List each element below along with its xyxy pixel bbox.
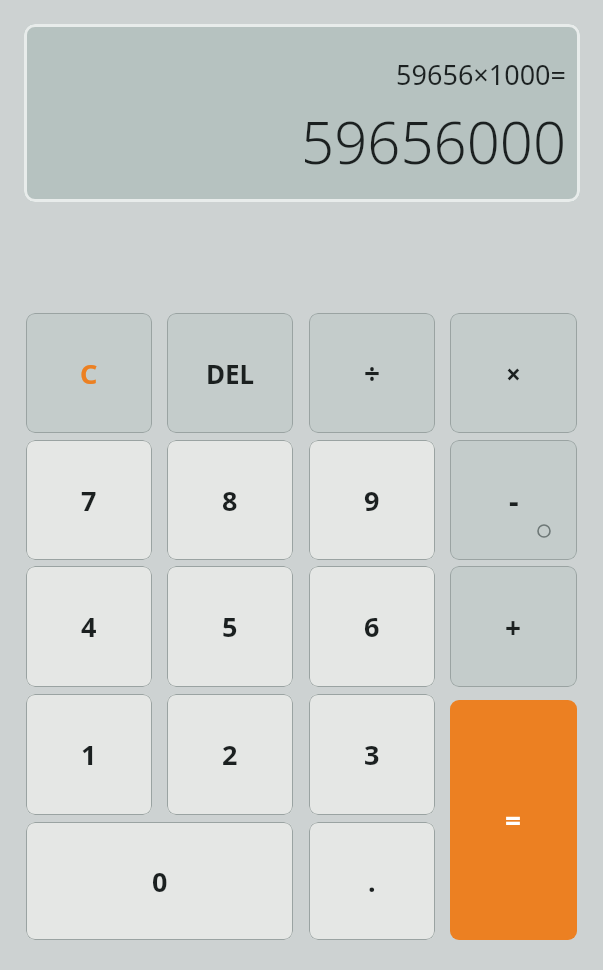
staticText: 2: [222, 736, 238, 773]
button[interactable]: 8: [167, 440, 293, 560]
staticText: ÷: [364, 354, 381, 392]
staticText: C: [80, 355, 98, 392]
staticText: DEL: [206, 356, 255, 391]
button[interactable]: 59656×1000=: [24, 24, 580, 202]
button[interactable]: 5: [167, 566, 293, 687]
staticText: +: [505, 608, 522, 646]
staticText: 7: [81, 482, 97, 519]
staticText: .: [368, 863, 376, 900]
staticText: -: [509, 480, 519, 521]
button[interactable]: 6: [309, 566, 435, 687]
staticText: ×: [506, 356, 521, 391]
button[interactable]: 9: [309, 440, 435, 560]
staticText: 9: [364, 482, 380, 519]
button[interactable]: 7: [26, 440, 152, 560]
staticText: 0: [152, 863, 168, 900]
staticText: 59656000: [301, 102, 566, 181]
button[interactable]: Decimal point: [309, 822, 435, 940]
button[interactable]: Multiply: [450, 313, 577, 433]
button[interactable]: 4: [26, 566, 152, 687]
staticText: 4: [81, 608, 97, 645]
button[interactable]: Minus: [450, 440, 577, 560]
button[interactable]: Divide: [309, 313, 435, 433]
staticText: =: [505, 801, 522, 839]
button[interactable]: C: [26, 313, 152, 433]
staticText: 3: [364, 736, 380, 773]
staticText: 6: [364, 608, 380, 645]
button[interactable]: 0: [26, 822, 293, 940]
button[interactable]: Plus: [450, 566, 577, 687]
staticText: 8: [222, 482, 238, 519]
staticText: 1: [81, 736, 97, 773]
staticText: 59656×1000=: [396, 56, 566, 93]
button[interactable]: 3: [309, 694, 435, 815]
staticText: 5: [222, 608, 238, 645]
button[interactable]: Equals: [450, 700, 577, 940]
button[interactable]: DEL: [167, 313, 293, 433]
button[interactable]: 1: [26, 694, 152, 815]
button[interactable]: 2: [167, 694, 293, 815]
